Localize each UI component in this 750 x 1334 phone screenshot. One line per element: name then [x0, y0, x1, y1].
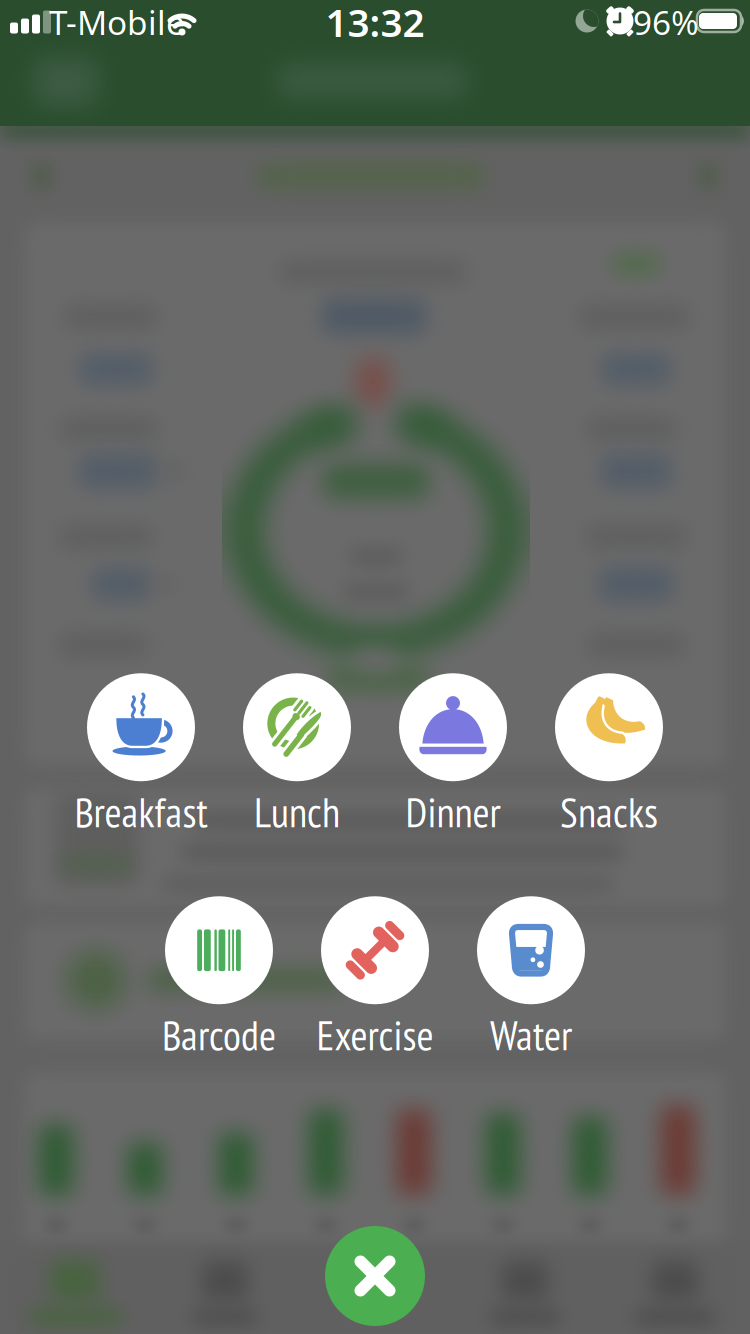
- button[interactable]: Barcode: [162, 896, 276, 1062]
- button[interactable]: Water: [477, 896, 585, 1062]
- staticText: Breakfast: [74, 785, 207, 839]
- staticText: 96%: [633, 0, 699, 44]
- button[interactable]: Dinner: [399, 673, 507, 839]
- button[interactable]: Snacks: [555, 673, 663, 839]
- staticText: Snacks: [560, 785, 658, 839]
- button[interactable]: Lunch: [243, 673, 351, 839]
- button[interactable]: Exercise: [316, 896, 433, 1062]
- staticText: 13:32: [325, 0, 424, 48]
- staticText: Dinner: [405, 785, 500, 839]
- button[interactable]: Breakfast: [74, 673, 207, 839]
- staticText: Barcode: [162, 1008, 276, 1062]
- staticText: Lunch: [254, 785, 340, 839]
- staticText: T-Mobile: [49, 0, 185, 44]
- staticText: Water: [490, 1008, 572, 1062]
- button[interactable]: Close: [325, 1226, 425, 1326]
- staticText: Exercise: [316, 1008, 433, 1062]
